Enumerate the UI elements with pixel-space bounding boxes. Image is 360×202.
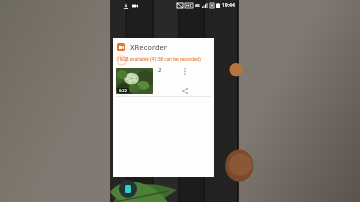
button[interactable]: 0:22 — [113, 66, 214, 96]
staticText: 19:44 — [222, 2, 235, 9]
button[interactable]: Share — [180, 86, 190, 96]
staticText: 16GB available (41:38 can be recorded) — [117, 56, 201, 62]
button[interactable]: More options — [180, 66, 190, 76]
staticText: 0:22 — [119, 88, 127, 93]
staticText: XRecorder — [130, 42, 168, 52]
button[interactable]: XRecorder — [113, 38, 214, 56]
staticText: 4G — [195, 3, 200, 8]
button[interactable]: Start recording — [119, 180, 137, 198]
